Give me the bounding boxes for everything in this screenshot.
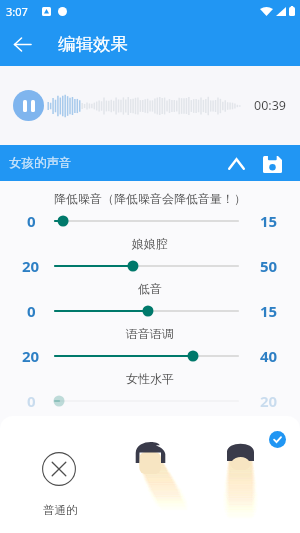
staticText: 娘娘腔 bbox=[0, 236, 300, 251]
staticText: 50 bbox=[260, 256, 278, 276]
button[interactable]: 普通的 bbox=[0, 416, 100, 533]
staticText: 20 bbox=[22, 346, 40, 366]
button[interactable] bbox=[100, 416, 200, 533]
button[interactable]: 娘娘腔 bbox=[49, 254, 244, 278]
staticText: 女性水平 bbox=[0, 371, 300, 386]
button[interactable]: 低音 bbox=[49, 299, 244, 323]
staticText: 20 bbox=[22, 256, 40, 276]
staticText: 女孩的声音 bbox=[9, 155, 72, 171]
staticText: 普通的 bbox=[43, 503, 78, 517]
button[interactable]: Collapse bbox=[219, 146, 253, 180]
button[interactable]: 女性水平 bbox=[49, 389, 244, 413]
staticText: 降低噪音（降低噪音会降低音量！） bbox=[0, 191, 300, 206]
button[interactable]: 降低噪音（降低噪音会降低音量！） bbox=[49, 209, 244, 233]
staticText: 40 bbox=[260, 346, 278, 366]
button[interactable] bbox=[200, 416, 300, 533]
staticText: 15 bbox=[260, 211, 278, 231]
staticText: 编辑效果 bbox=[58, 33, 128, 55]
staticText: 15 bbox=[260, 301, 278, 321]
staticText: 3:07 bbox=[6, 4, 28, 19]
button[interactable]: Save bbox=[255, 146, 289, 180]
staticText: 0 bbox=[27, 301, 36, 321]
staticText: 20 bbox=[260, 391, 278, 411]
staticText: 0 bbox=[27, 211, 36, 231]
staticText: 0 bbox=[27, 391, 36, 411]
button[interactable]: Pause bbox=[13, 90, 44, 121]
button[interactable]: Back bbox=[4, 26, 40, 62]
staticText: 00:39 bbox=[254, 97, 286, 114]
staticText: 语音语调 bbox=[0, 326, 300, 341]
staticText: 低音 bbox=[0, 281, 300, 296]
button[interactable]: 语音语调 bbox=[49, 344, 244, 368]
